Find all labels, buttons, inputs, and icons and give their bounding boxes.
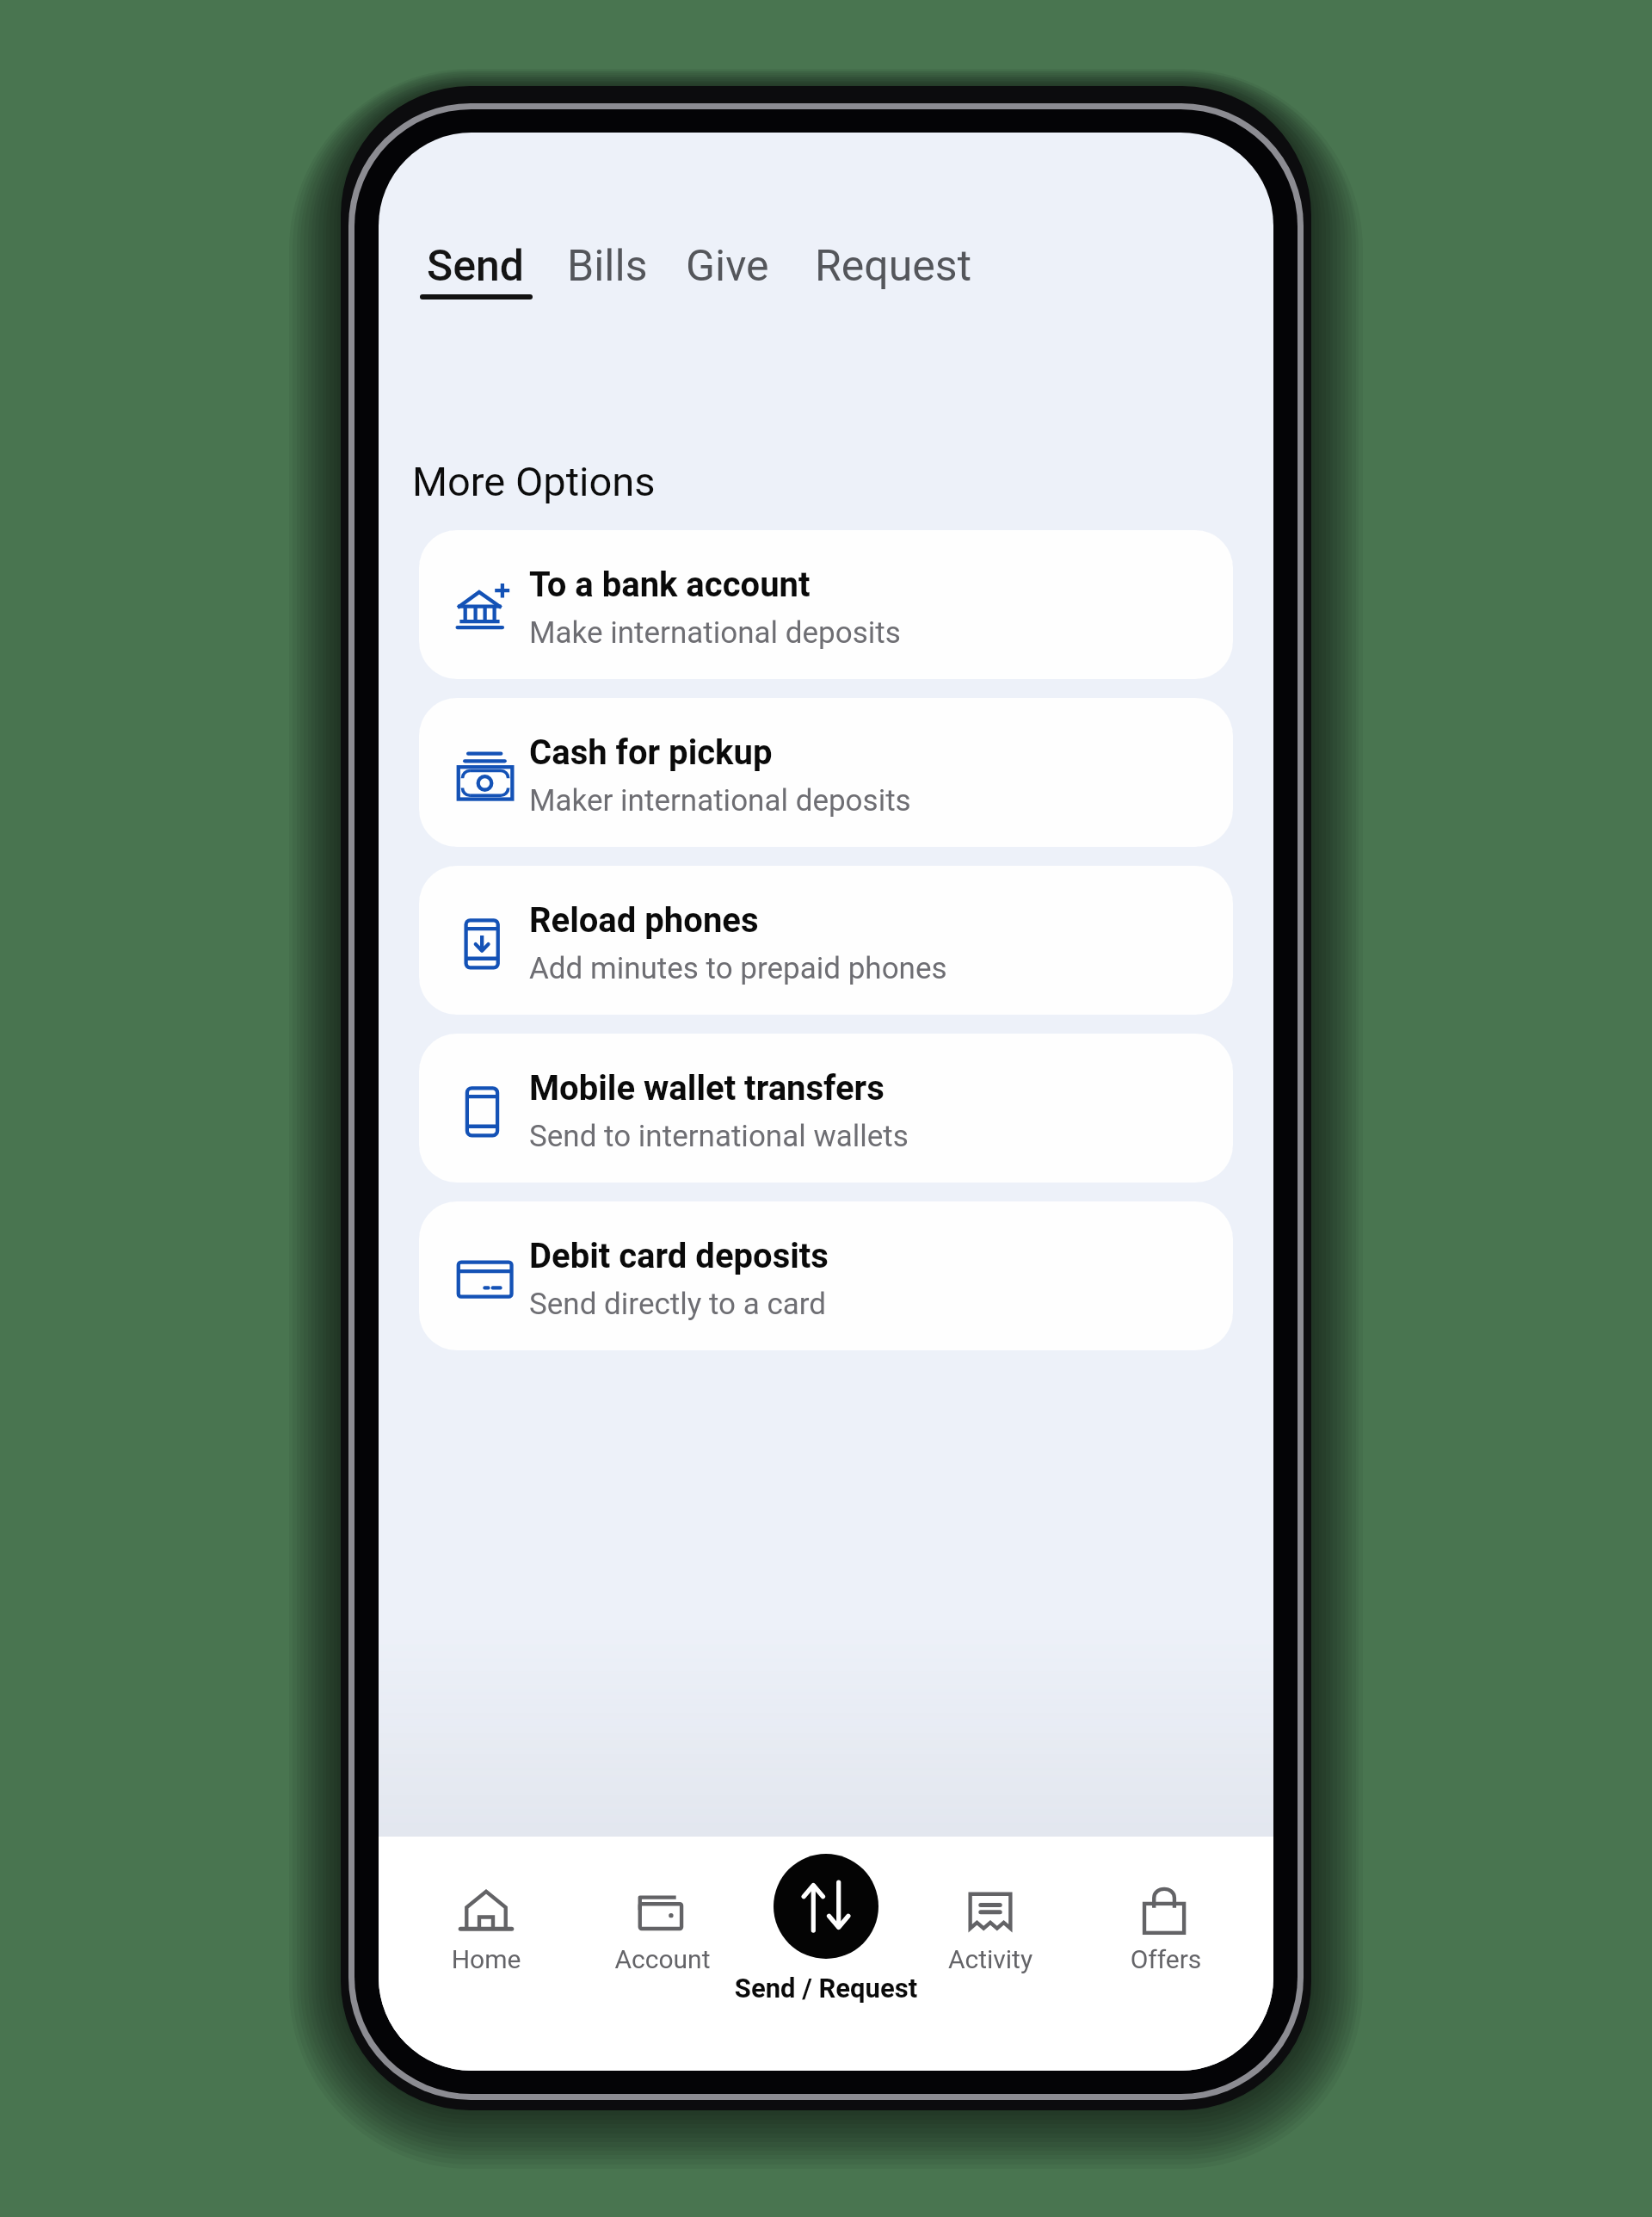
other: Home [459, 1881, 514, 1936]
button[interactable]: Mobile wallet transfers [419, 1034, 1233, 1183]
staticText: Maker international deposits [529, 783, 911, 818]
staticText: Home [400, 1944, 572, 1974]
button[interactable]: Bills [553, 229, 662, 304]
button[interactable]: Account [576, 1881, 749, 1974]
staticText: Reload phones [529, 900, 759, 941]
button[interactable]: Cash for pickup [419, 698, 1233, 847]
staticText: Account [576, 1944, 749, 1974]
other: Account [635, 1881, 690, 1936]
button[interactable]: Activity [904, 1881, 1076, 1974]
staticText: Cash for pickup [529, 732, 773, 773]
staticText: Add minutes to prepaid phones [529, 951, 947, 986]
button[interactable]: Offers [1080, 1881, 1252, 1974]
staticText: Send / Request [671, 1973, 981, 2004]
button[interactable]: Give [672, 229, 783, 304]
button[interactable]: Send or Request [671, 1854, 981, 2004]
other: Offers [1138, 1881, 1193, 1936]
staticText: Request [815, 241, 971, 292]
staticText: To a bank account [529, 565, 811, 605]
button[interactable]: To a bank account [419, 530, 1233, 679]
staticText: Mobile wallet transfers [529, 1068, 885, 1108]
button[interactable]: Request [801, 229, 985, 304]
button[interactable]: Reload phones [419, 866, 1233, 1015]
other: Activity [963, 1881, 1018, 1936]
staticText: Bills [567, 241, 648, 292]
button[interactable]: Home [400, 1881, 572, 1974]
staticText: Debit card deposits [529, 1236, 829, 1276]
staticText: Activity [904, 1944, 1076, 1974]
button[interactable]: Send [405, 229, 546, 312]
staticText: Send directly to a card [529, 1287, 827, 1322]
other: Send or Request [796, 1876, 856, 1936]
staticText: Send [427, 241, 525, 292]
staticText: Offers [1080, 1944, 1252, 1974]
staticText: More Options [412, 458, 656, 505]
button[interactable]: Debit card deposits [419, 1201, 1233, 1350]
staticText: Give [686, 241, 769, 292]
staticText: Make international deposits [529, 615, 901, 651]
staticText: Send to international wallets [529, 1119, 909, 1154]
